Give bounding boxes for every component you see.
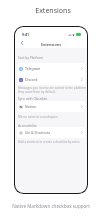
staticText: 9:41 bbox=[22, 32, 30, 37]
button[interactable]: Notion bbox=[17, 101, 85, 112]
staticText: Discord bbox=[25, 77, 38, 82]
staticText: Extensions bbox=[41, 42, 62, 47]
staticText: Messages you receive are sorted to the p… bbox=[18, 86, 87, 94]
button[interactable]: Back bbox=[17, 38, 26, 48]
staticText: Sync with Obsidian bbox=[18, 96, 48, 100]
staticText: Add a shortcut to create a checklist by … bbox=[18, 140, 87, 144]
button[interactable]: Discord bbox=[17, 74, 85, 85]
staticText: Telegram bbox=[25, 66, 41, 71]
staticText: Sort by Platform bbox=[18, 55, 44, 59]
staticText: Extensions bbox=[2, 6, 102, 16]
staticText: Siri & Shortcuts bbox=[25, 130, 51, 135]
staticText: Notion bbox=[25, 104, 37, 109]
staticText: Mirror notes to a workspace. bbox=[18, 115, 87, 119]
button[interactable]: Siri & Shortcuts bbox=[17, 127, 85, 138]
button[interactable]: Telegram bbox=[17, 63, 85, 74]
staticText: Accessibility bbox=[18, 123, 37, 127]
staticText: Native Markdown checkbox support bbox=[0, 203, 102, 209]
